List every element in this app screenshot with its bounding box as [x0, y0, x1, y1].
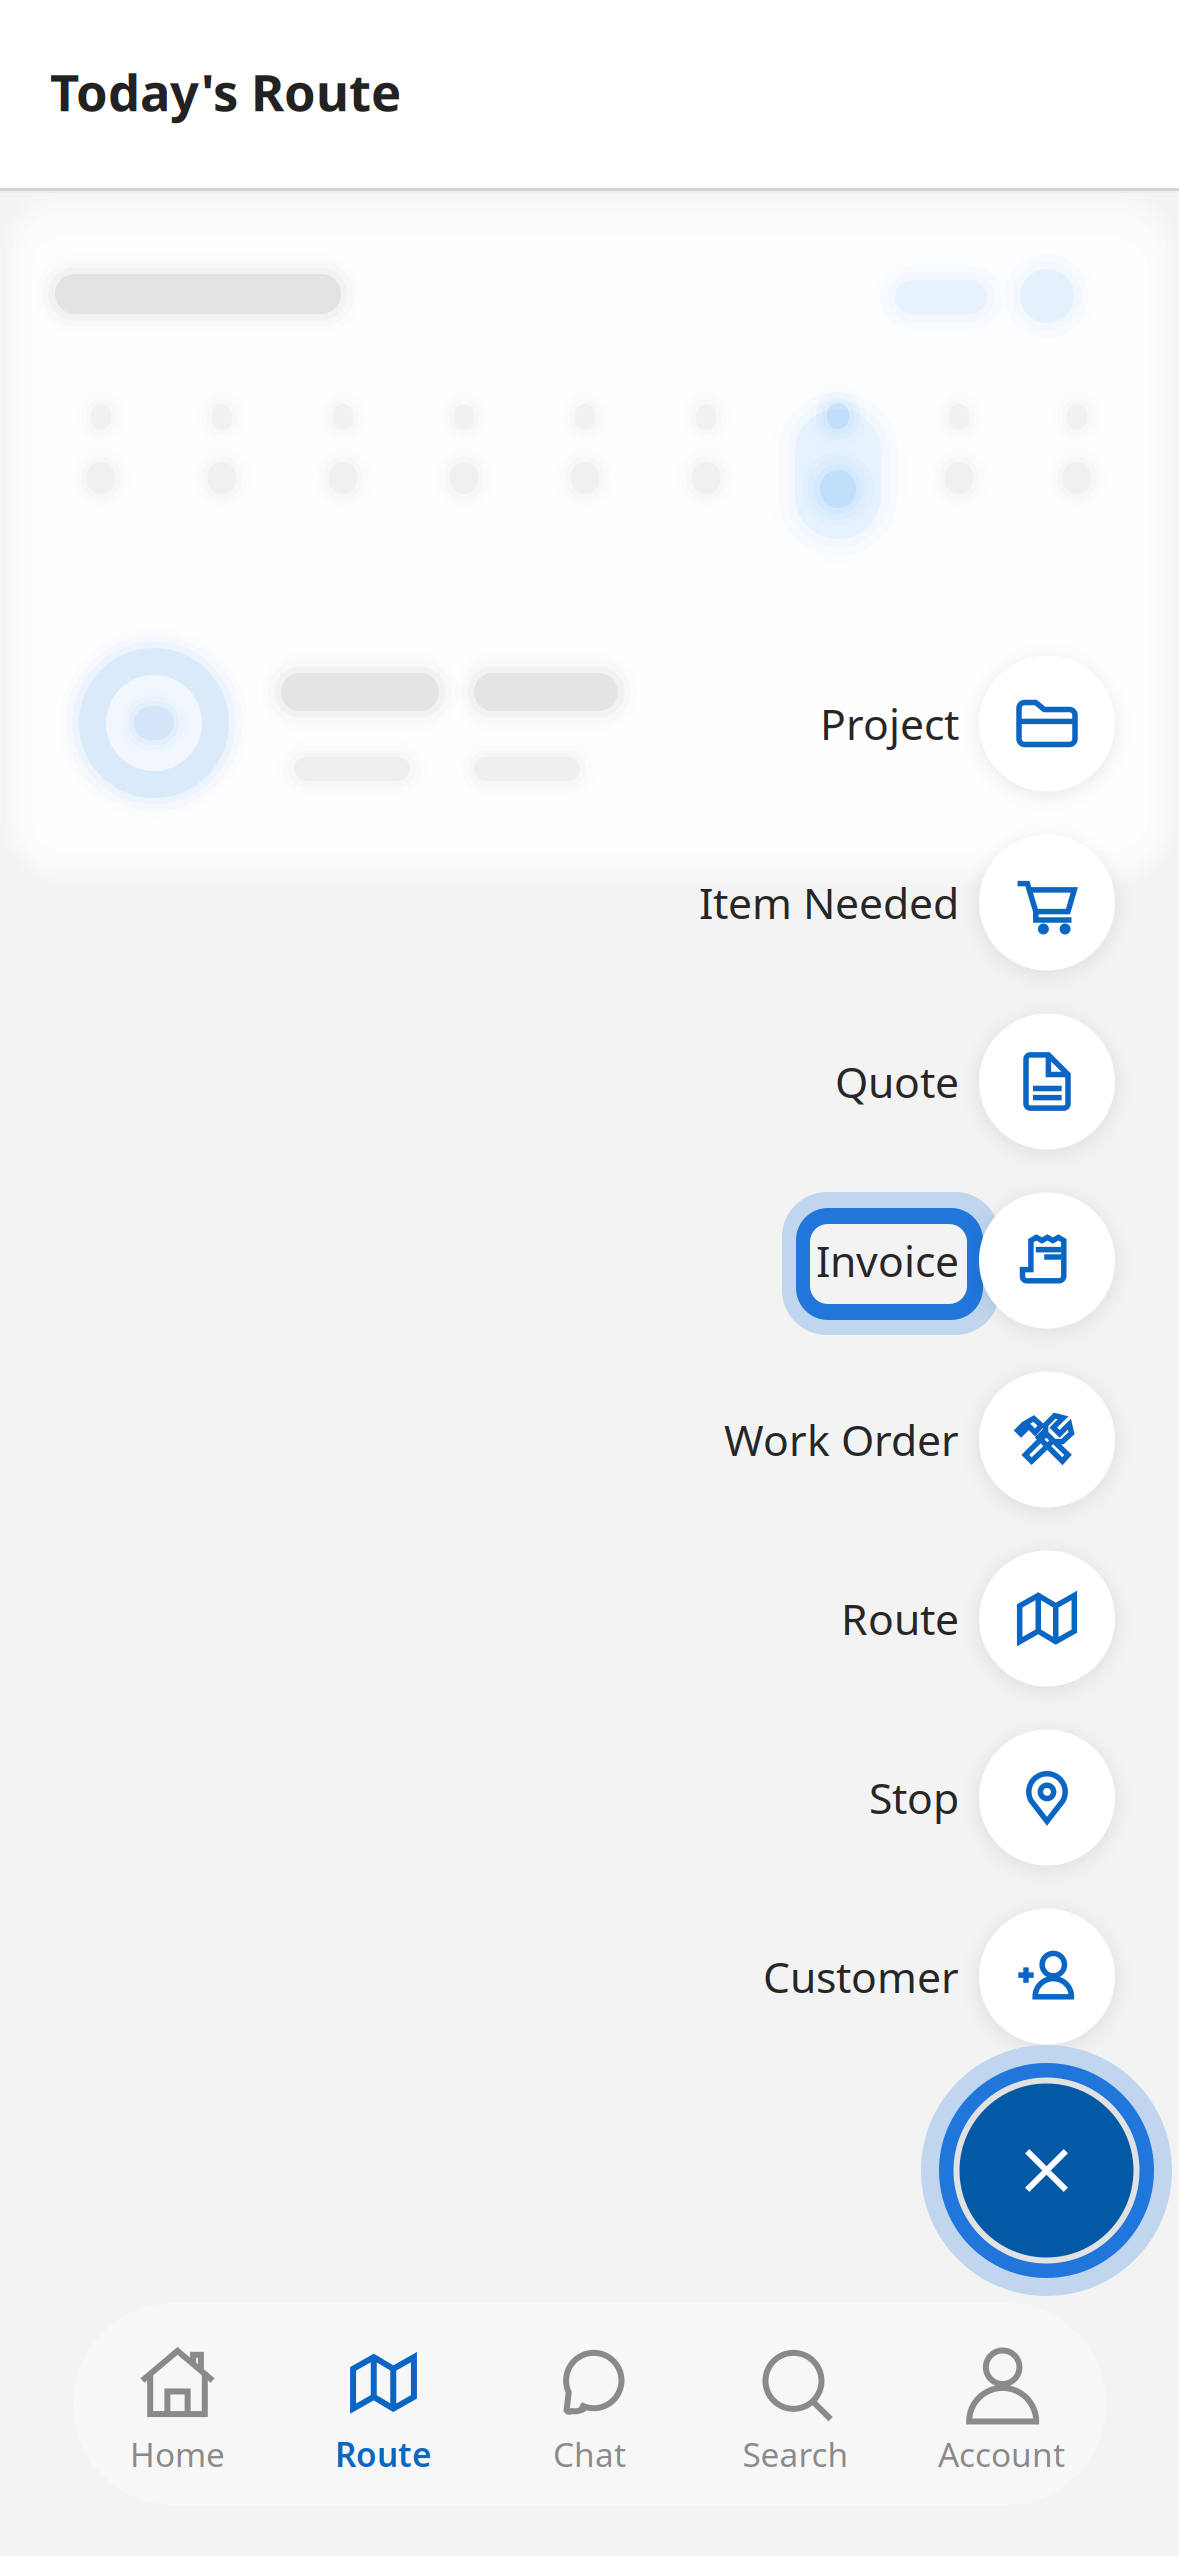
- staticText: Project: [820, 695, 959, 752]
- button[interactable]: Project: [0, 634, 1179, 813]
- button[interactable]: Route: [0, 1529, 1179, 1708]
- staticText: Item Needed: [699, 874, 959, 931]
- button[interactable]: Route: [280, 2303, 486, 2505]
- button[interactable]: Invoice: [0, 1171, 1179, 1350]
- staticText: Home: [130, 2432, 225, 2476]
- staticText: Account: [938, 2432, 1065, 2476]
- button[interactable]: Item Needed: [0, 813, 1179, 992]
- button[interactable]: Chat: [486, 2303, 692, 2505]
- staticText: Route: [841, 1590, 959, 1647]
- staticText: Search: [742, 2432, 848, 2476]
- staticText: Invoice: [816, 1232, 959, 1289]
- button[interactable]: Quote: [0, 992, 1179, 1171]
- staticText: Customer: [763, 1948, 959, 2005]
- staticText: Stop: [869, 1769, 959, 1826]
- button[interactable]: Customer: [0, 1887, 1179, 2066]
- staticText: Route: [335, 2432, 432, 2476]
- button[interactable]: Account: [898, 2303, 1104, 2505]
- button[interactable]: Stop: [0, 1708, 1179, 1887]
- staticText: Quote: [835, 1053, 959, 1110]
- button[interactable]: Work Order: [0, 1350, 1179, 1529]
- staticText: Today's Route: [50, 58, 401, 125]
- button[interactable]: Close menu: [0, 2071, 1179, 2270]
- button[interactable]: Search: [692, 2303, 898, 2505]
- staticText: Work Order: [724, 1411, 959, 1468]
- button[interactable]: Home: [74, 2303, 280, 2505]
- staticText: Chat: [553, 2432, 626, 2476]
